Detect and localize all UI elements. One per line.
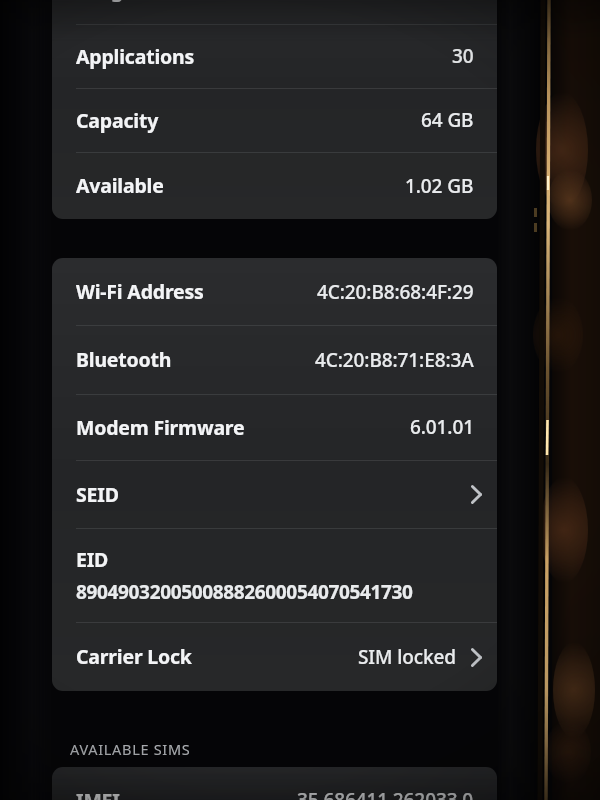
staticText: Capacity bbox=[76, 107, 159, 134]
staticText: Bluetooth bbox=[76, 346, 172, 373]
other: Open details bbox=[465, 643, 487, 671]
button[interactable]: Available bbox=[52, 152, 497, 219]
staticText: 6.01.01 bbox=[410, 414, 474, 440]
staticText: Wi-Fi Address bbox=[76, 278, 204, 305]
button[interactable]: SEID bbox=[52, 460, 497, 528]
button[interactable]: Applications bbox=[52, 24, 497, 88]
button[interactable]: IMEI bbox=[52, 767, 497, 800]
staticText: 4C:20:B8:71:E8:3A bbox=[315, 347, 474, 373]
staticText: Applications bbox=[76, 43, 195, 70]
button[interactable]: Wi-Fi Address bbox=[52, 258, 497, 325]
staticText: Modem Firmware bbox=[76, 414, 245, 441]
staticText: AVAILABLE SIMS bbox=[70, 739, 191, 759]
staticText: Available bbox=[76, 172, 164, 199]
staticText: SIM locked bbox=[358, 644, 456, 670]
staticText: IMEI bbox=[76, 787, 120, 800]
staticText: Songs bbox=[76, 0, 133, 3]
staticText: 1.02 GB bbox=[405, 173, 474, 199]
button[interactable]: EID bbox=[52, 528, 497, 622]
button[interactable]: Capacity bbox=[52, 88, 497, 152]
staticText: 4C:20:B8:68:4F:29 bbox=[317, 279, 474, 305]
button[interactable]: Modem Firmware bbox=[52, 394, 497, 460]
other: Open details bbox=[465, 480, 487, 508]
button[interactable]: Songs bbox=[52, 0, 497, 24]
button[interactable]: Bluetooth bbox=[52, 325, 497, 394]
staticText: 89049032005008882600054070541730 bbox=[76, 579, 413, 605]
button[interactable]: Carrier Lock bbox=[52, 622, 497, 691]
staticText: 30 bbox=[452, 43, 474, 69]
staticText: 35 686411 262033 0 bbox=[297, 787, 474, 800]
staticText: SEID bbox=[76, 481, 119, 508]
staticText: Carrier Lock bbox=[76, 643, 192, 670]
staticText: 64 GB bbox=[421, 107, 474, 133]
staticText: EID bbox=[76, 546, 109, 573]
